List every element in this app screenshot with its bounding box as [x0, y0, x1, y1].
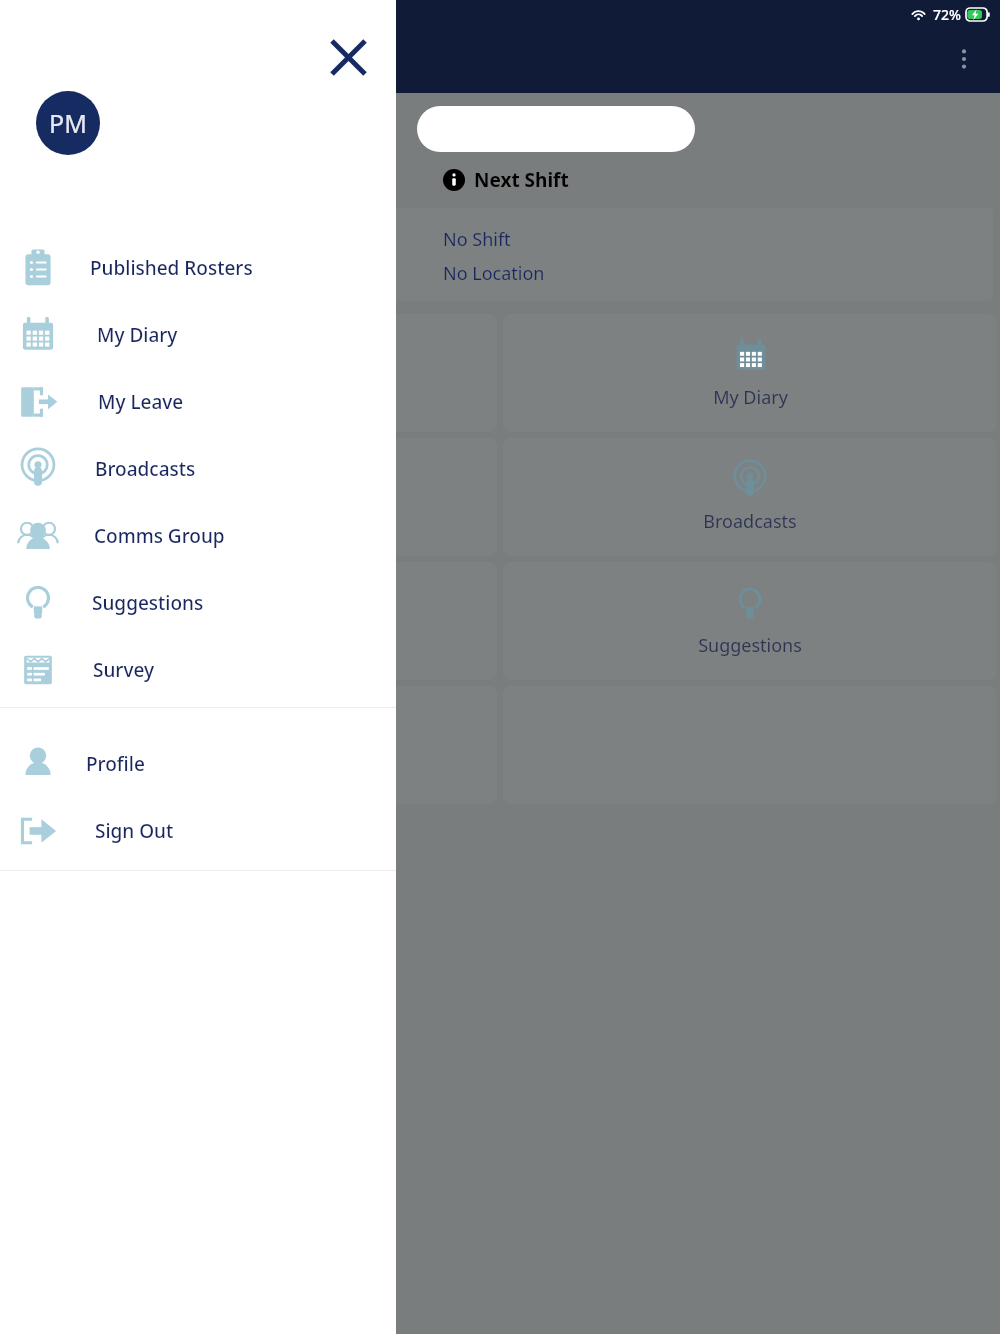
button[interactable]: Comms Group: [3, 562, 497, 680]
button[interactable]: Published Rosters: [0, 234, 396, 301]
button[interactable]: My Diary: [503, 314, 997, 432]
staticText: My Diary: [713, 385, 788, 410]
staticText: My Leave: [210, 509, 290, 534]
staticText: PM: [49, 106, 87, 140]
button[interactable]: Close menu: [322, 31, 374, 83]
button[interactable]: Suggestions: [503, 562, 997, 680]
button[interactable]: My Leave: [0, 368, 396, 435]
button[interactable]: No Shift: [7, 208, 993, 301]
button[interactable]: Survey: [0, 636, 396, 703]
button[interactable]: Broadcasts: [503, 438, 997, 556]
staticText: Published Rosters: [90, 255, 253, 281]
staticText: Broadcasts: [95, 456, 196, 482]
staticText: No Shift: [443, 227, 511, 252]
button[interactable]: Suggestions: [0, 569, 396, 636]
staticText: No Location: [443, 261, 545, 286]
button[interactable]: Broadcasts: [0, 435, 396, 502]
button[interactable]: App title: [2, 21, 368, 78]
staticText: Broadcasts: [703, 509, 797, 534]
staticText: Sign Out: [95, 818, 174, 844]
button[interactable]: Profile avatar PM: [36, 91, 100, 155]
staticText: Published Rosters: [174, 385, 326, 410]
button[interactable]: More options: [942, 37, 986, 81]
staticText: Suggestions: [92, 590, 204, 616]
button[interactable]: Survey: [3, 686, 497, 804]
button[interactable]: Comms Group: [0, 502, 396, 569]
staticText: My Diary: [97, 322, 178, 348]
staticText: Comms Group: [94, 523, 225, 549]
staticText: Profile: [86, 751, 145, 777]
button[interactable]: Profile: [0, 730, 396, 797]
button[interactable]: Published Rosters: [3, 314, 497, 432]
staticText: 72%: [933, 5, 961, 24]
button[interactable]: Sign Out: [0, 797, 396, 864]
staticText: Next Shift: [474, 167, 569, 193]
staticText: Suggestions: [698, 633, 802, 658]
button[interactable]: Search: [417, 106, 695, 152]
button[interactable]: My Leave: [3, 438, 497, 556]
staticText: My Leave: [98, 389, 184, 415]
button[interactable]: My Diary: [0, 301, 396, 368]
staticText: Survey: [93, 657, 154, 683]
